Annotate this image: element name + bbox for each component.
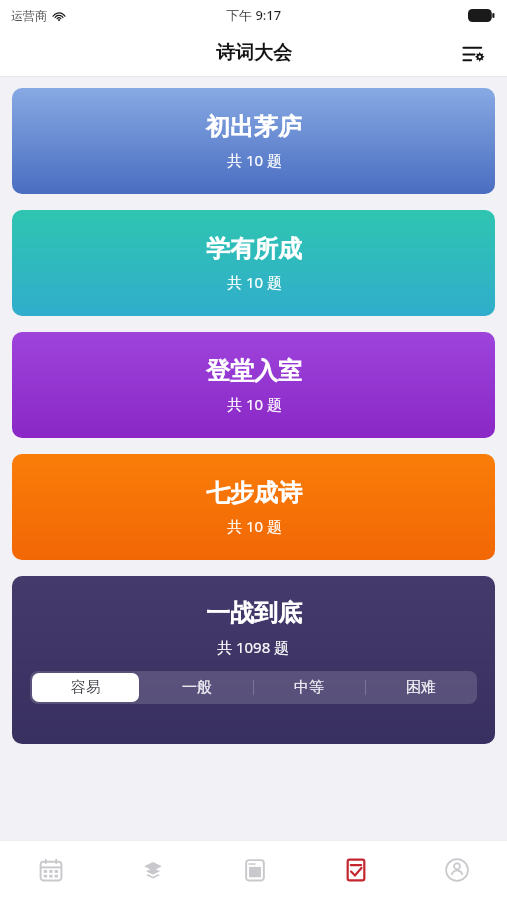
button[interactable]: 初出茅庐 (12, 88, 495, 194)
button[interactable]: 容易 (30, 671, 141, 704)
button[interactable]: 中等 (253, 671, 365, 704)
staticText: 诗词大会 (216, 41, 292, 65)
staticText: 七步成诗 (206, 478, 302, 508)
staticText: 共 10 题 (227, 394, 282, 414)
staticText: 下午 9:17 (226, 6, 282, 24)
button[interactable]: Calendar (0, 840, 102, 900)
button[interactable]: 七步成诗 (12, 454, 495, 560)
staticText: 一般 (182, 678, 212, 697)
staticText: 共 10 题 (227, 516, 282, 536)
staticText: 登堂入室 (206, 356, 302, 386)
button[interactable]: 登堂入室 (12, 332, 495, 438)
staticText: 学有所成 (206, 234, 302, 264)
button[interactable]: 学有所成 (12, 210, 495, 316)
button[interactable]: Settings (455, 34, 493, 72)
button[interactable]: Articles (204, 840, 305, 900)
staticText: 初出茅庐 (206, 112, 302, 142)
staticText: 容易 (71, 678, 101, 697)
button[interactable]: Quiz (305, 840, 406, 900)
staticText: 共 10 题 (227, 150, 282, 170)
button[interactable]: Account (406, 840, 507, 900)
staticText: 共 1098 题 (217, 637, 290, 657)
button[interactable]: Layers (102, 840, 204, 900)
button[interactable]: 困难 (365, 671, 477, 704)
button[interactable]: 一般 (141, 671, 253, 704)
staticText: 共 10 题 (227, 272, 282, 292)
staticText: 一战到底 (206, 598, 302, 628)
staticText: 运营商 (11, 8, 47, 23)
staticText: 中等 (294, 678, 324, 697)
staticText: 困难 (406, 678, 436, 697)
